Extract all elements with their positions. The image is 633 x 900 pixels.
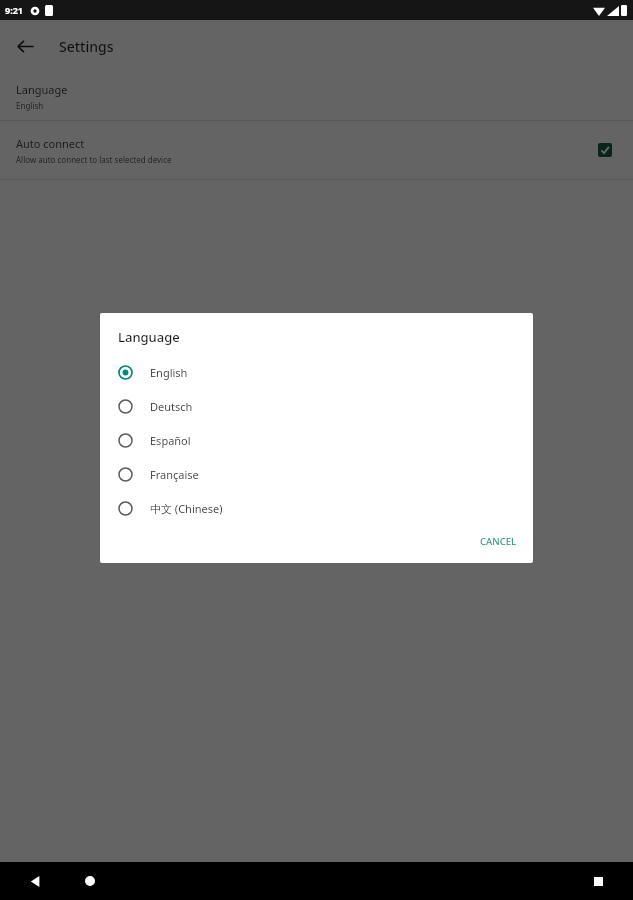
staticText: Español <box>150 433 191 448</box>
staticText: Française <box>150 467 199 482</box>
staticText: Language <box>118 328 180 346</box>
button[interactable]: Auto connect <box>0 121 633 179</box>
staticText: 9:21 <box>5 4 23 16</box>
button[interactable]: Back <box>6 27 44 65</box>
staticText: Deutsch <box>150 399 193 414</box>
button[interactable]: Recent apps <box>585 868 611 894</box>
button[interactable]: Language <box>0 72 633 120</box>
staticText: Language <box>16 82 68 97</box>
button[interactable]: 中文 (Chinese) <box>100 491 533 525</box>
button[interactable]: English <box>100 355 533 389</box>
staticText: Allow auto connect to last selected devi… <box>16 154 172 165</box>
button[interactable]: Español <box>100 423 533 457</box>
button[interactable]: Deutsch <box>100 389 533 423</box>
staticText: 中文 (Chinese) <box>150 501 223 516</box>
button[interactable]: Back <box>22 868 48 894</box>
button[interactable]: Française <box>100 457 533 491</box>
staticText: English <box>16 100 44 111</box>
button[interactable]: CANCEL <box>472 528 525 555</box>
staticText: CANCEL <box>480 535 517 548</box>
staticText: Auto connect <box>16 136 85 151</box>
button[interactable]: Auto connect checkbox <box>591 136 619 164</box>
staticText: English <box>150 365 188 380</box>
staticText: Settings <box>59 37 114 56</box>
button[interactable]: Home <box>77 868 103 894</box>
